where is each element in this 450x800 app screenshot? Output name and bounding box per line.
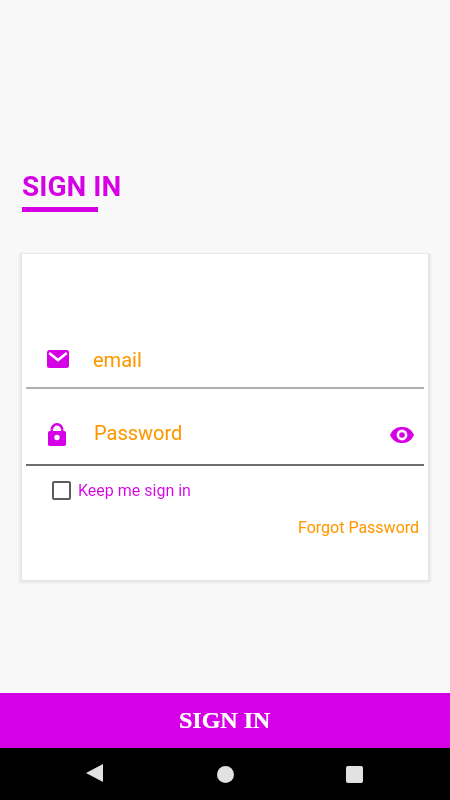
- staticText: email: [93, 348, 142, 371]
- staticText: Forgot Password: [298, 518, 420, 537]
- staticText: SIGN IN: [179, 707, 271, 734]
- button[interactable]: Keep me sign in: [48, 477, 195, 504]
- button[interactable]: Back: [70, 749, 118, 797]
- staticText: SIGN IN: [22, 170, 122, 203]
- staticText: Keep me sign in: [78, 481, 191, 500]
- button[interactable]: Home: [201, 750, 249, 798]
- button[interactable]: Password: [26, 411, 424, 464]
- button[interactable]: SIGN IN: [0, 693, 450, 748]
- button[interactable]: Recent apps: [330, 750, 378, 798]
- staticText: Password: [94, 421, 183, 444]
- button[interactable]: Show password: [384, 417, 420, 453]
- button[interactable]: Forgot Password: [290, 510, 428, 545]
- button[interactable]: email: [26, 336, 424, 387]
